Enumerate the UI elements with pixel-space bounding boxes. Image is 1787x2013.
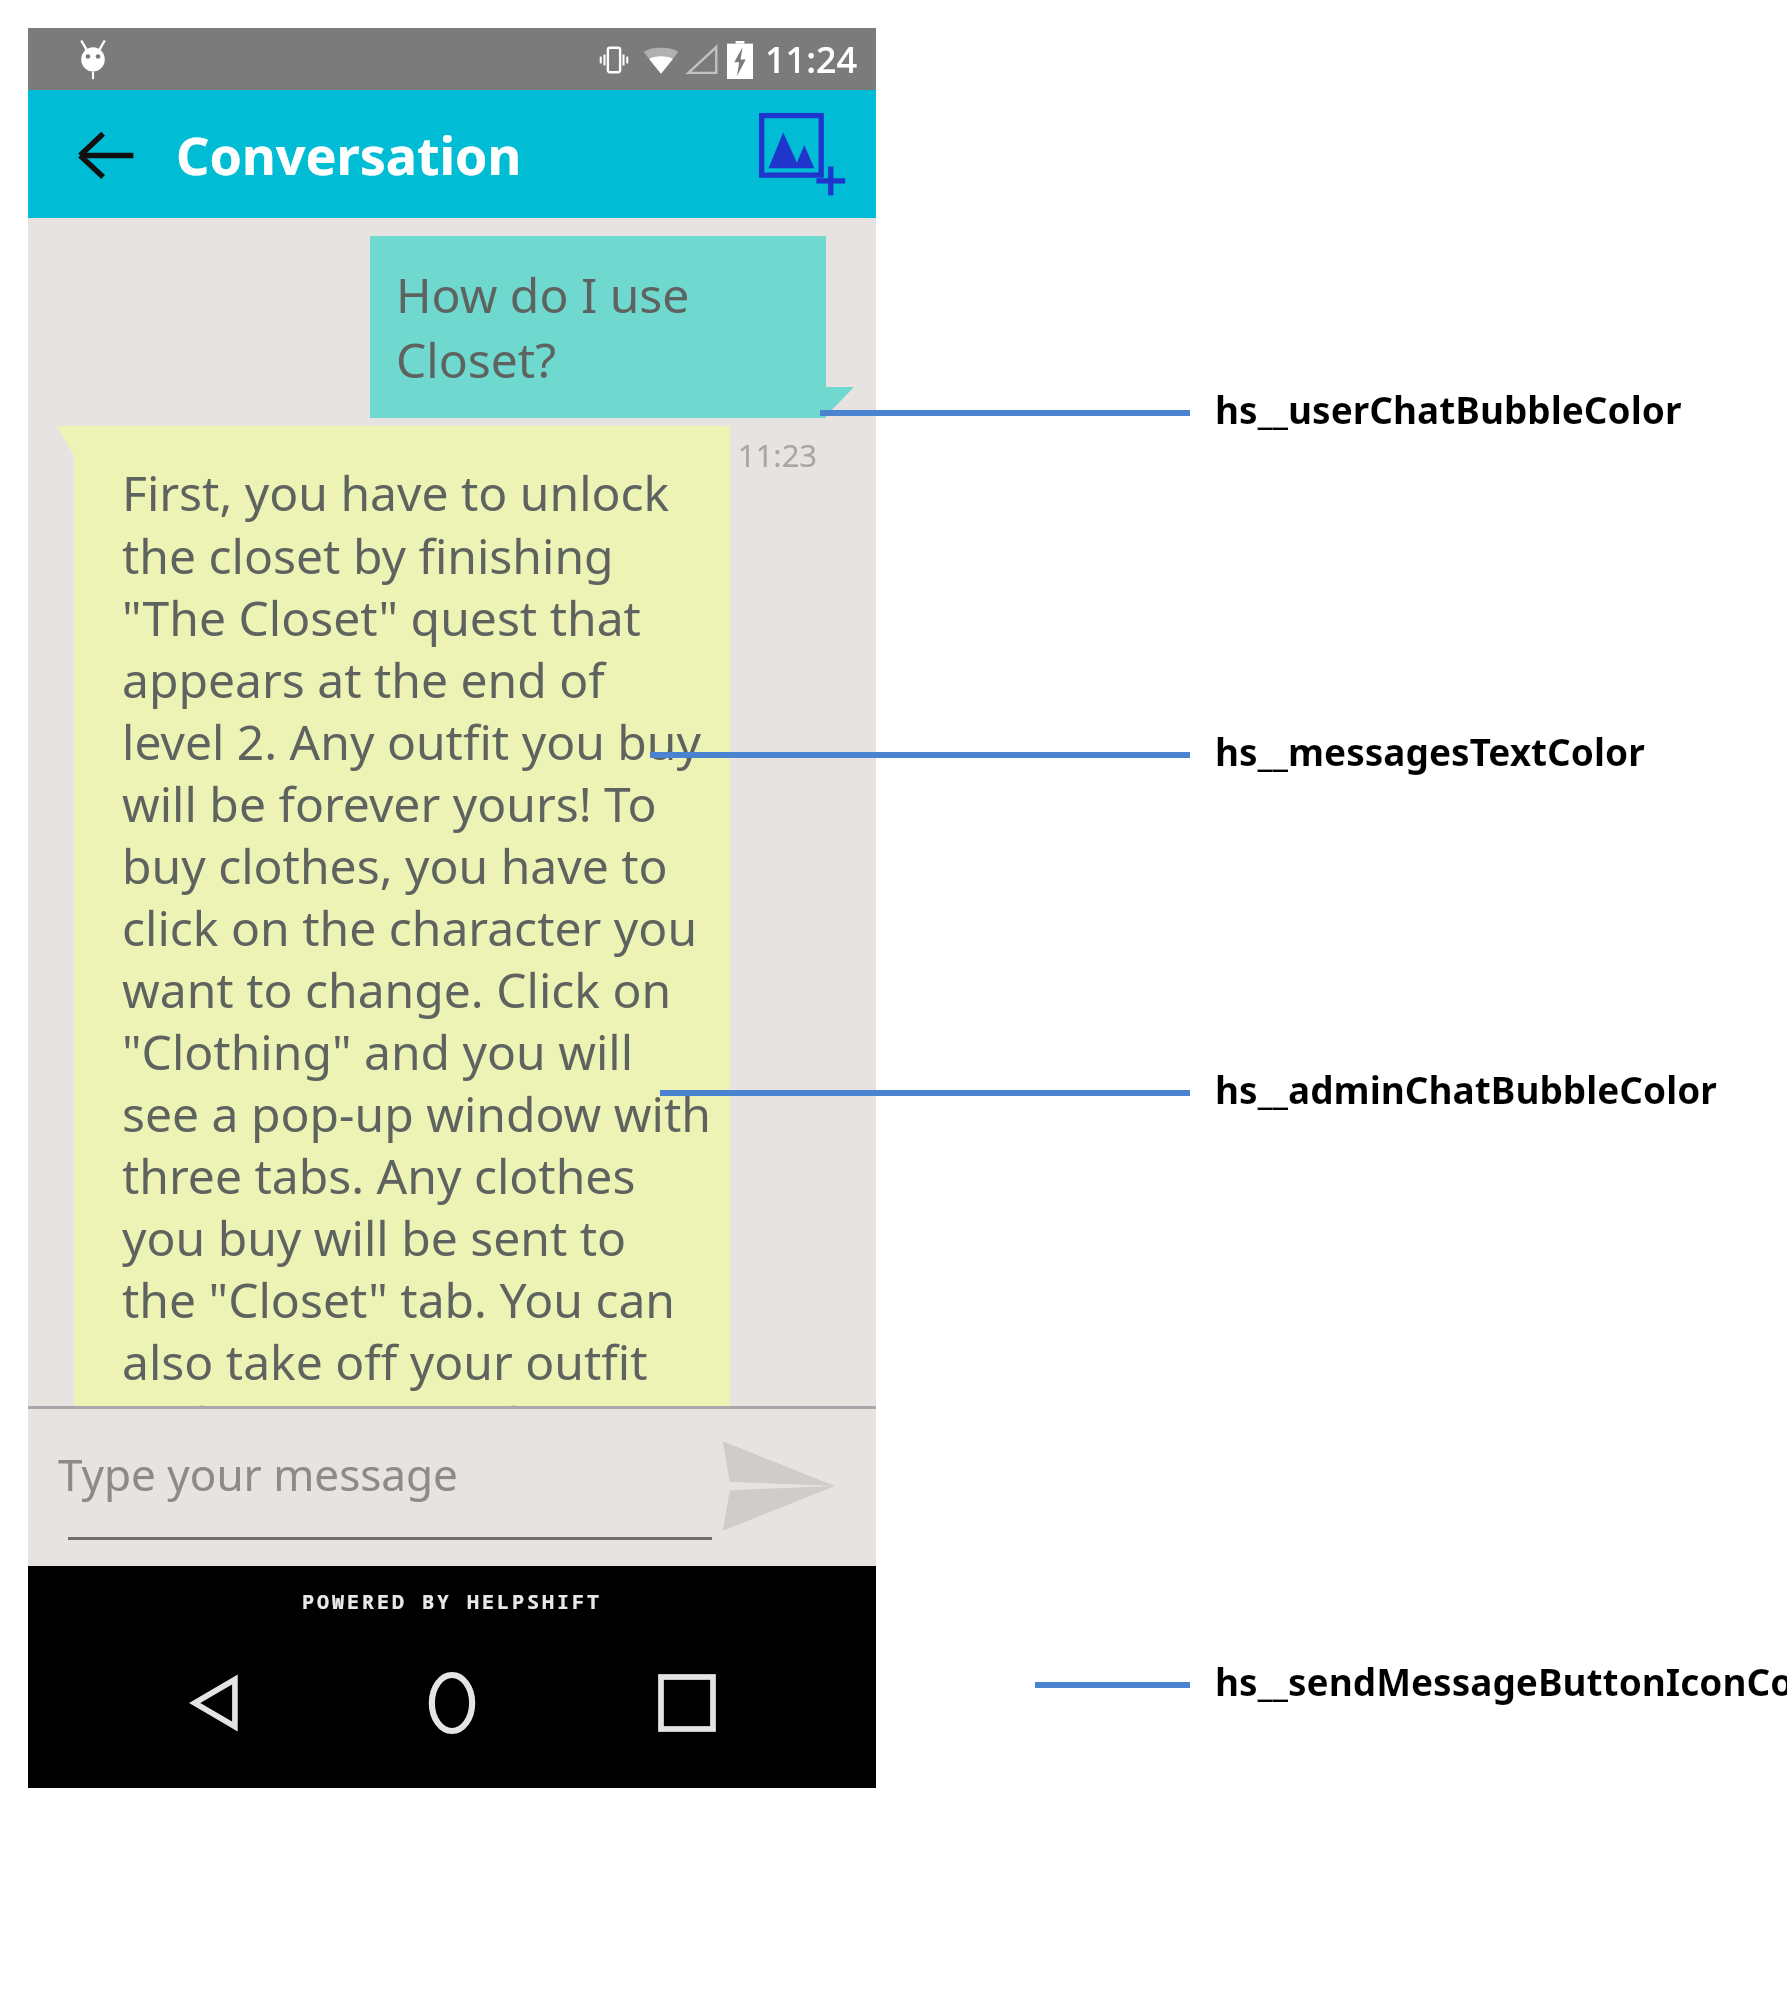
button[interactable]: Attach image <box>754 106 850 202</box>
button[interactable]: Recent apps <box>641 1657 733 1749</box>
button[interactable]: Back <box>70 118 142 190</box>
button[interactable]: Home <box>406 1657 498 1749</box>
staticText: hs__adminChatBubbleColor <box>1215 1064 1717 1114</box>
staticText: hs__messagesTextColor <box>1215 726 1645 776</box>
staticText: hs__userChatBubbleColor <box>1215 384 1682 434</box>
button[interactable]: Send message <box>706 1416 846 1556</box>
button[interactable]: Back <box>171 1657 263 1749</box>
staticText: hs__sendMessageButtonIconColor <box>1215 1656 1787 1706</box>
staticText: 25-Nov-2014 11:23 <box>546 434 818 476</box>
staticText: First, you have to unlock the closet by … <box>122 460 712 1580</box>
staticText: Conversation <box>176 119 522 190</box>
button[interactable]: How do I use Closet? <box>370 236 826 418</box>
staticText: How do I use Closet? <box>396 262 800 392</box>
button[interactable]: Type your message <box>58 1444 458 1504</box>
button[interactable]: First, you have to unlock the closet by … <box>74 426 730 1614</box>
staticText: 11:24 <box>765 35 858 84</box>
staticText: POWERED BY HELPSHIFT <box>302 1588 602 1615</box>
